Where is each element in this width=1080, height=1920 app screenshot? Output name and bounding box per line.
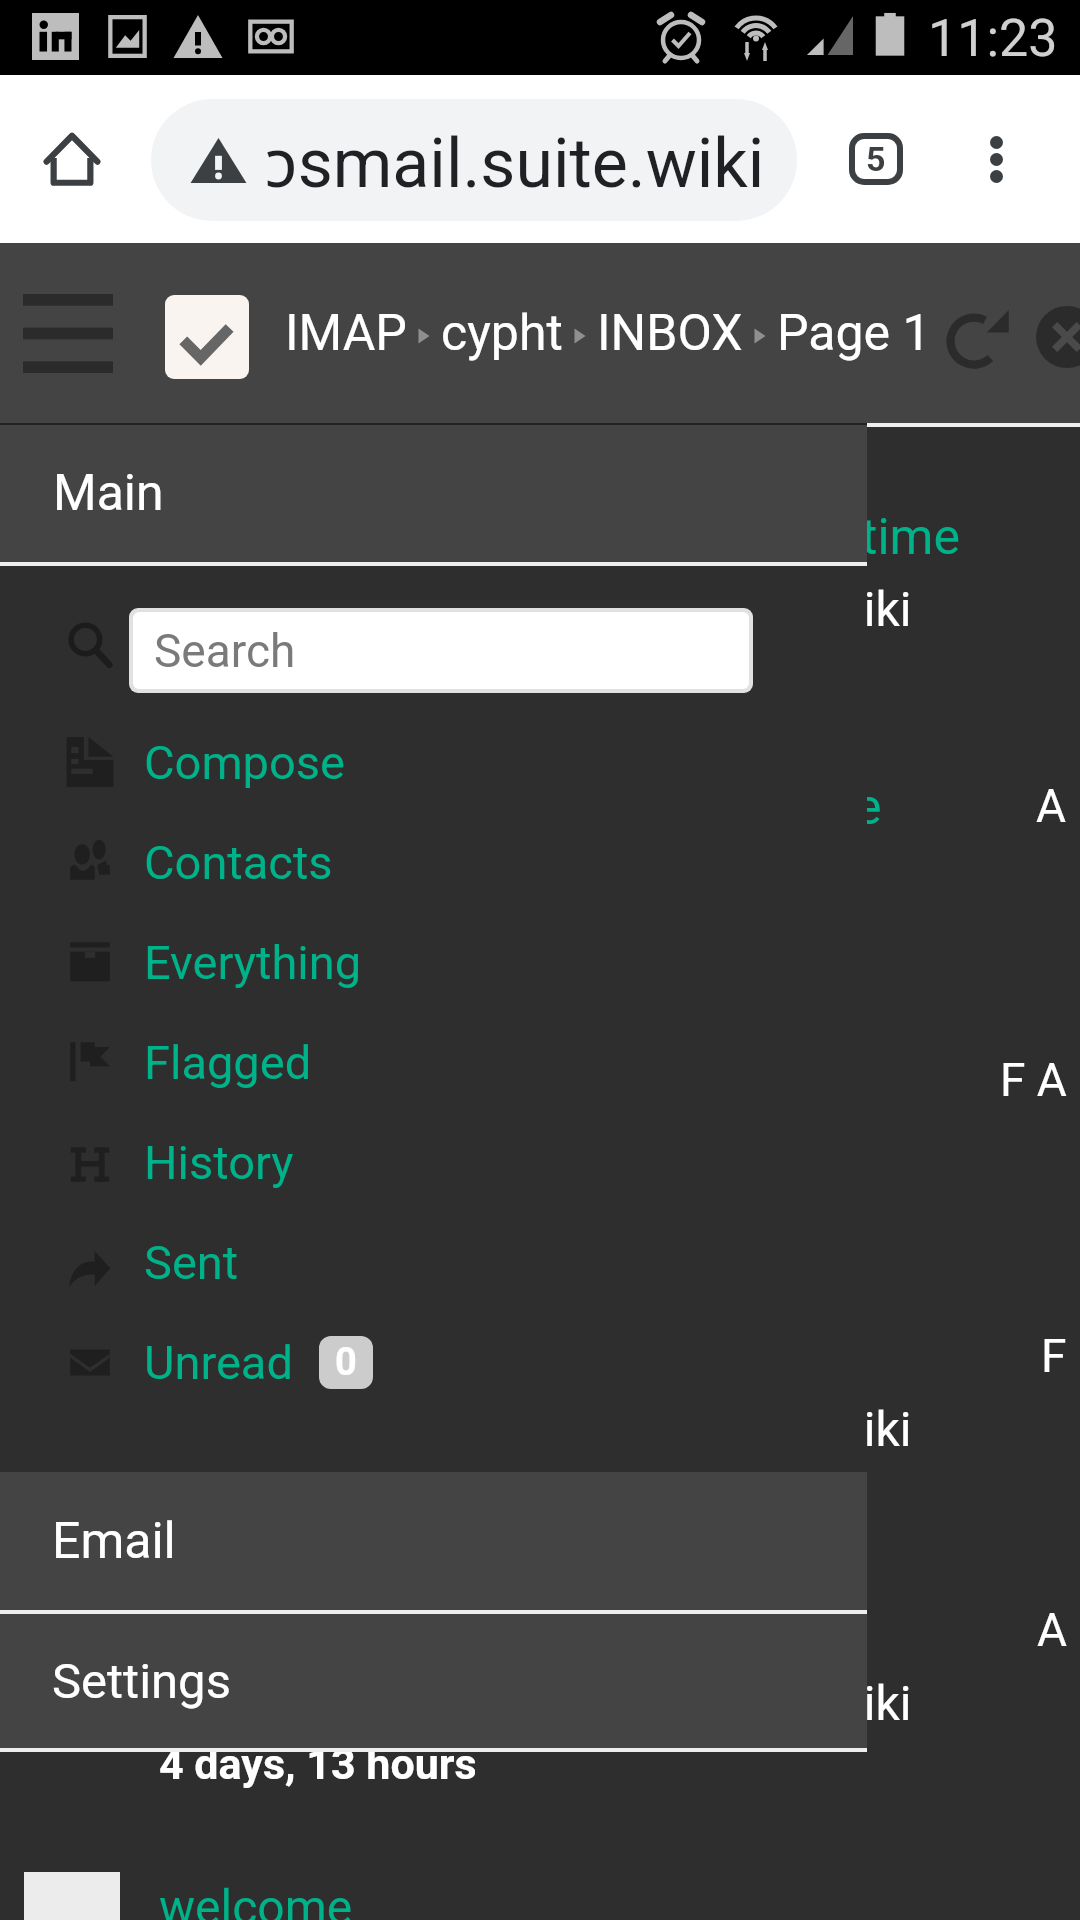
button[interactable]: Tabs — [826, 100, 926, 218]
staticText: Flagged — [144, 1035, 312, 1090]
button[interactable]: Select all — [165, 295, 249, 379]
staticText: F — [1041, 1329, 1067, 1383]
staticText: Contacts — [144, 835, 333, 890]
button[interactable]: Menu — [4, 259, 132, 407]
staticText: 5 — [866, 139, 886, 179]
staticText: A — [1037, 1603, 1068, 1657]
staticText: Search — [154, 624, 296, 678]
staticText: suite.wiki — [711, 581, 912, 637]
staticText: Email — [52, 1512, 176, 1571]
button[interactable]: ɔsmail.suite.wiki — [151, 99, 797, 221]
button[interactable]: Everything — [0, 912, 867, 1012]
button[interactable]: Settings — [0, 1614, 867, 1748]
staticText: 4 days, 13 hours — [159, 1739, 477, 1789]
staticText: Compose — [144, 735, 345, 790]
button[interactable]: History — [0, 1112, 867, 1212]
button[interactable]: Main — [0, 425, 867, 562]
staticText: Total time — [737, 508, 960, 567]
button[interactable]: Contacts — [0, 812, 867, 912]
button[interactable]: Unread — [0, 1312, 867, 1412]
staticText: Unread — [144, 1335, 293, 1390]
button[interactable]: More options — [946, 100, 1046, 218]
button[interactable]: Compose — [0, 712, 867, 812]
staticText: suite.wiki — [711, 1675, 912, 1731]
staticText: suite.wiki — [711, 1401, 912, 1457]
button[interactable]: Refresh — [929, 271, 1029, 409]
staticText: Page 1 — [777, 304, 931, 363]
button[interactable]: Search — [133, 612, 749, 689]
staticText: History — [144, 1135, 294, 1190]
button[interactable]: Flagged — [0, 1012, 867, 1112]
staticText: Everything — [144, 935, 362, 990]
staticText: welcome — [159, 1879, 353, 1920]
button[interactable]: Email — [0, 1472, 867, 1610]
staticText: ɔsmail.suite.wiki — [265, 114, 765, 207]
staticText: INBOX — [597, 304, 743, 363]
button[interactable]: Cancel — [1026, 264, 1080, 402]
staticText: F A — [1000, 1053, 1067, 1107]
staticText: A — [1036, 779, 1067, 833]
button[interactable]: Home — [22, 100, 122, 218]
staticText: 11:23 — [928, 8, 1058, 69]
staticText: cypht — [441, 304, 563, 363]
staticText: IMAP — [285, 304, 407, 363]
staticText: Main — [53, 464, 164, 523]
staticText: Settings — [52, 1653, 231, 1710]
button[interactable]: Sent — [0, 1212, 867, 1312]
staticText: e — [855, 778, 882, 837]
staticText: Sent — [144, 1235, 239, 1290]
staticText: 0 — [335, 1340, 357, 1385]
